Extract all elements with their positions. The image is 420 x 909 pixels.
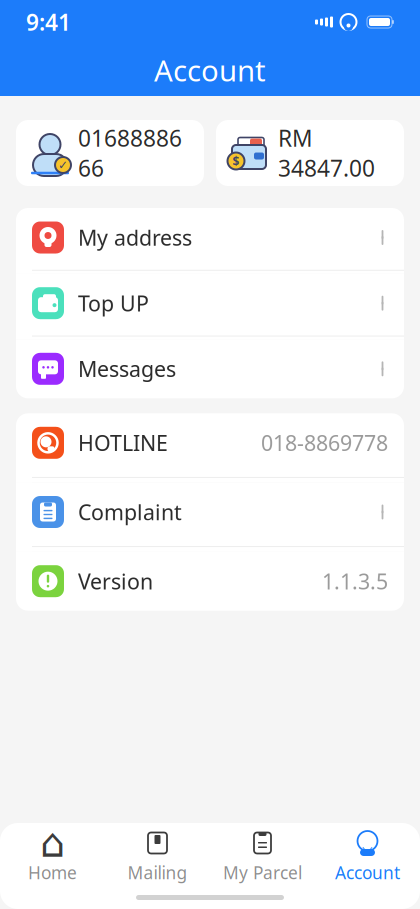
staticText: ✓ (58, 158, 68, 172)
button[interactable]: Top UP (16, 274, 404, 339)
staticText: Top UP (78, 289, 149, 317)
button[interactable]: Version (16, 552, 404, 611)
staticText: Mailing (127, 861, 187, 884)
staticText: 0168888666 (78, 123, 182, 183)
staticText: Account (154, 50, 266, 89)
staticText: HOTLINE (78, 429, 168, 457)
staticText: Messages (78, 355, 176, 383)
staticText: ‿ (362, 828, 373, 851)
button[interactable]: Complaint (16, 482, 404, 552)
button[interactable]: Messages (16, 339, 404, 398)
button[interactable]: ✓ (16, 120, 204, 186)
button[interactable]: Mailing (105, 820, 210, 884)
button[interactable]: ⌂ (0, 820, 105, 884)
button[interactable]: $ (216, 120, 404, 186)
staticText: Version (78, 567, 153, 595)
staticText: Account (335, 861, 400, 884)
staticText: $ (232, 153, 239, 169)
staticText: Home (28, 861, 77, 884)
button[interactable]: ‿ (315, 820, 420, 884)
staticText: My Parcel (223, 861, 302, 884)
staticText: My address (78, 223, 192, 252)
button[interactable]: My Parcel (210, 820, 315, 884)
staticText: RM 34847.00 (278, 123, 375, 183)
button[interactable]: My address (16, 208, 404, 274)
staticText: 1.1.3.5 (322, 567, 388, 595)
staticText: 9:41 (26, 7, 71, 37)
staticText: ⌂ (40, 820, 65, 866)
staticText: 018-8869778 (261, 429, 388, 457)
staticText: Complaint (78, 498, 182, 526)
button[interactable]: HOTLINE (16, 413, 404, 482)
